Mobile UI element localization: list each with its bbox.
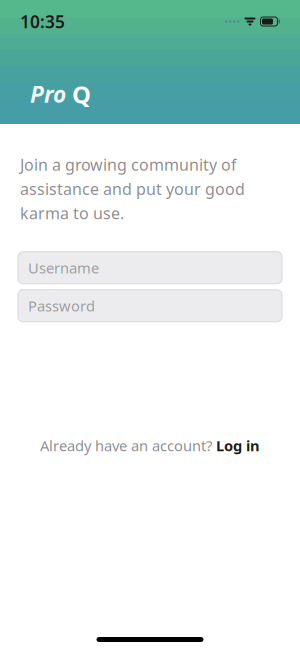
staticText: Already have an account?	[40, 436, 212, 455]
staticText: Password	[28, 296, 95, 315]
button[interactable]: Password	[18, 290, 282, 322]
staticText: Username	[28, 258, 99, 277]
staticText	[66, 79, 72, 109]
staticText: 10:35	[20, 10, 65, 33]
staticText: Join a growing community of assistance a…	[20, 154, 245, 224]
staticText: Log in	[216, 436, 260, 455]
staticText: Q	[72, 78, 91, 110]
button[interactable]: Username	[18, 252, 282, 284]
button[interactable]: Already have an account?	[0, 430, 300, 461]
staticText: Pro	[30, 79, 66, 109]
